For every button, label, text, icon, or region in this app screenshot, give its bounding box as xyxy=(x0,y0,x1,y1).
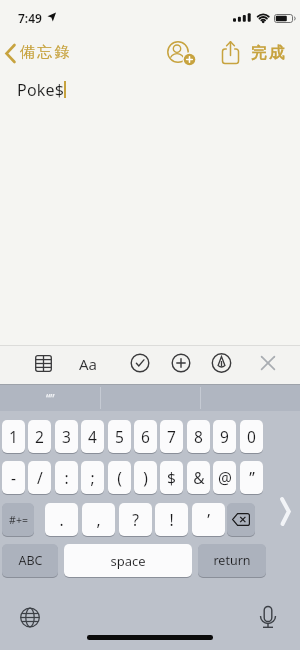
button[interactable]: 2 xyxy=(28,420,51,453)
staticText: ’ xyxy=(207,509,210,530)
staticText: 備忘錄 xyxy=(20,43,72,62)
button[interactable] xyxy=(126,349,154,377)
staticText: 8 xyxy=(194,426,203,447)
staticText: ? xyxy=(132,509,139,530)
staticText: 3 xyxy=(62,426,71,447)
staticText: $ xyxy=(167,467,176,488)
button[interactable]: 4 xyxy=(81,420,104,453)
staticText: 2 xyxy=(35,426,44,447)
button[interactable]: 3 xyxy=(55,420,78,453)
button[interactable]: & xyxy=(187,461,210,494)
button[interactable] xyxy=(256,604,280,632)
staticText: 完成 xyxy=(251,43,287,63)
staticText: 9 xyxy=(220,426,229,447)
button[interactable]: 完成 xyxy=(247,42,297,66)
button[interactable]: 1 xyxy=(2,420,25,453)
staticText: ABC xyxy=(18,552,43,569)
button[interactable] xyxy=(207,349,235,377)
button[interactable]: 備忘錄 xyxy=(0,40,85,66)
button[interactable]: . xyxy=(45,503,78,536)
button[interactable]: 6 xyxy=(134,420,157,453)
button[interactable]: #+= xyxy=(2,503,34,536)
button[interactable]: space xyxy=(64,544,192,577)
staticText: 0 xyxy=(247,426,256,447)
staticText: 4 xyxy=(88,426,97,447)
button[interactable] xyxy=(164,39,196,67)
button[interactable]: / xyxy=(28,461,51,494)
button[interactable]: ; xyxy=(81,461,104,494)
staticText: / xyxy=(37,467,43,488)
button[interactable]: ) xyxy=(134,461,157,494)
staticText: 6 xyxy=(141,426,150,447)
button[interactable]: ABC xyxy=(2,544,58,577)
button[interactable]: 8 xyxy=(187,420,210,453)
button[interactable]: : xyxy=(55,461,78,494)
button[interactable]: 5 xyxy=(108,420,131,453)
button[interactable]: ? xyxy=(119,503,152,536)
button[interactable]: 0 xyxy=(240,420,263,453)
staticText: return xyxy=(213,552,251,569)
button[interactable]: @ xyxy=(213,461,236,494)
staticText: 5 xyxy=(115,426,124,447)
button[interactable] xyxy=(227,503,255,536)
button[interactable]: ! xyxy=(155,503,188,536)
staticText: #+= xyxy=(9,513,28,527)
button[interactable]: ” xyxy=(240,461,263,494)
button[interactable]: return xyxy=(198,544,266,577)
staticText: , xyxy=(96,509,101,530)
button[interactable] xyxy=(254,349,282,377)
staticText: ) xyxy=(143,467,148,488)
button[interactable] xyxy=(167,349,195,377)
staticText: Aa xyxy=(79,354,98,374)
button[interactable]: ’ xyxy=(192,503,225,536)
staticText: 7:49 xyxy=(18,10,42,26)
staticText: space xyxy=(110,552,146,570)
button[interactable]: 7 xyxy=(160,420,183,453)
staticText: ” xyxy=(249,467,255,488)
button[interactable] xyxy=(30,350,58,380)
staticText: ; xyxy=(90,467,95,488)
button[interactable] xyxy=(220,40,242,66)
button[interactable]: - xyxy=(2,461,25,494)
button[interactable]: $ xyxy=(160,461,183,494)
staticText: ! xyxy=(169,509,174,530)
staticText: 1 xyxy=(9,426,18,447)
staticText: 7 xyxy=(167,426,176,447)
staticText: - xyxy=(11,467,16,488)
button[interactable]: ( xyxy=(108,461,131,494)
staticText: ( xyxy=(117,467,122,488)
staticText: . xyxy=(59,509,64,530)
button[interactable]: , xyxy=(82,503,115,536)
staticText: & xyxy=(193,467,205,488)
staticText: : xyxy=(64,467,69,488)
button[interactable] xyxy=(16,604,44,632)
staticText: “” xyxy=(46,390,55,406)
button[interactable]: “” xyxy=(0,385,100,411)
button[interactable]: Aa xyxy=(74,350,108,380)
staticText: @ xyxy=(218,467,232,488)
staticText: Poke$ xyxy=(17,79,65,101)
button[interactable]: 9 xyxy=(213,420,236,453)
